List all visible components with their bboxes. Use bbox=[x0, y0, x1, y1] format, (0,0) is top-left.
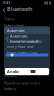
button[interactable]: Analiz bbox=[5, 68, 49, 75]
staticText: keeps battery low. bbox=[7, 50, 38, 55]
staticText: Analiz bbox=[7, 69, 19, 74]
staticText: ‹ bbox=[2, 3, 5, 15]
staticText: Automatic (recommended) bbox=[10, 33, 38, 44]
staticText: Checks for new data every hour and bbox=[7, 38, 42, 49]
button[interactable]: Back bbox=[2, 5, 6, 13]
staticText: Real-time uses more battery. bbox=[4, 80, 40, 91]
staticText: Automatic bbox=[7, 28, 25, 33]
staticText: Set how often new data is fetched. bbox=[4, 68, 46, 78]
staticText: ▮▮ ▮ bbox=[44, 0, 51, 5]
staticText: 9:41 bbox=[3, 0, 10, 5]
button[interactable]: Automatic bbox=[4, 27, 50, 34]
staticText: Subscribed bbox=[4, 23, 23, 28]
staticText: ✓ bbox=[5, 35, 9, 42]
button[interactable]: ✓ bbox=[4, 36, 50, 41]
staticText: Topics bbox=[4, 16, 15, 21]
button[interactable]: Subscribed bbox=[0, 23, 54, 28]
staticText: Bluetooth bbox=[7, 5, 32, 13]
